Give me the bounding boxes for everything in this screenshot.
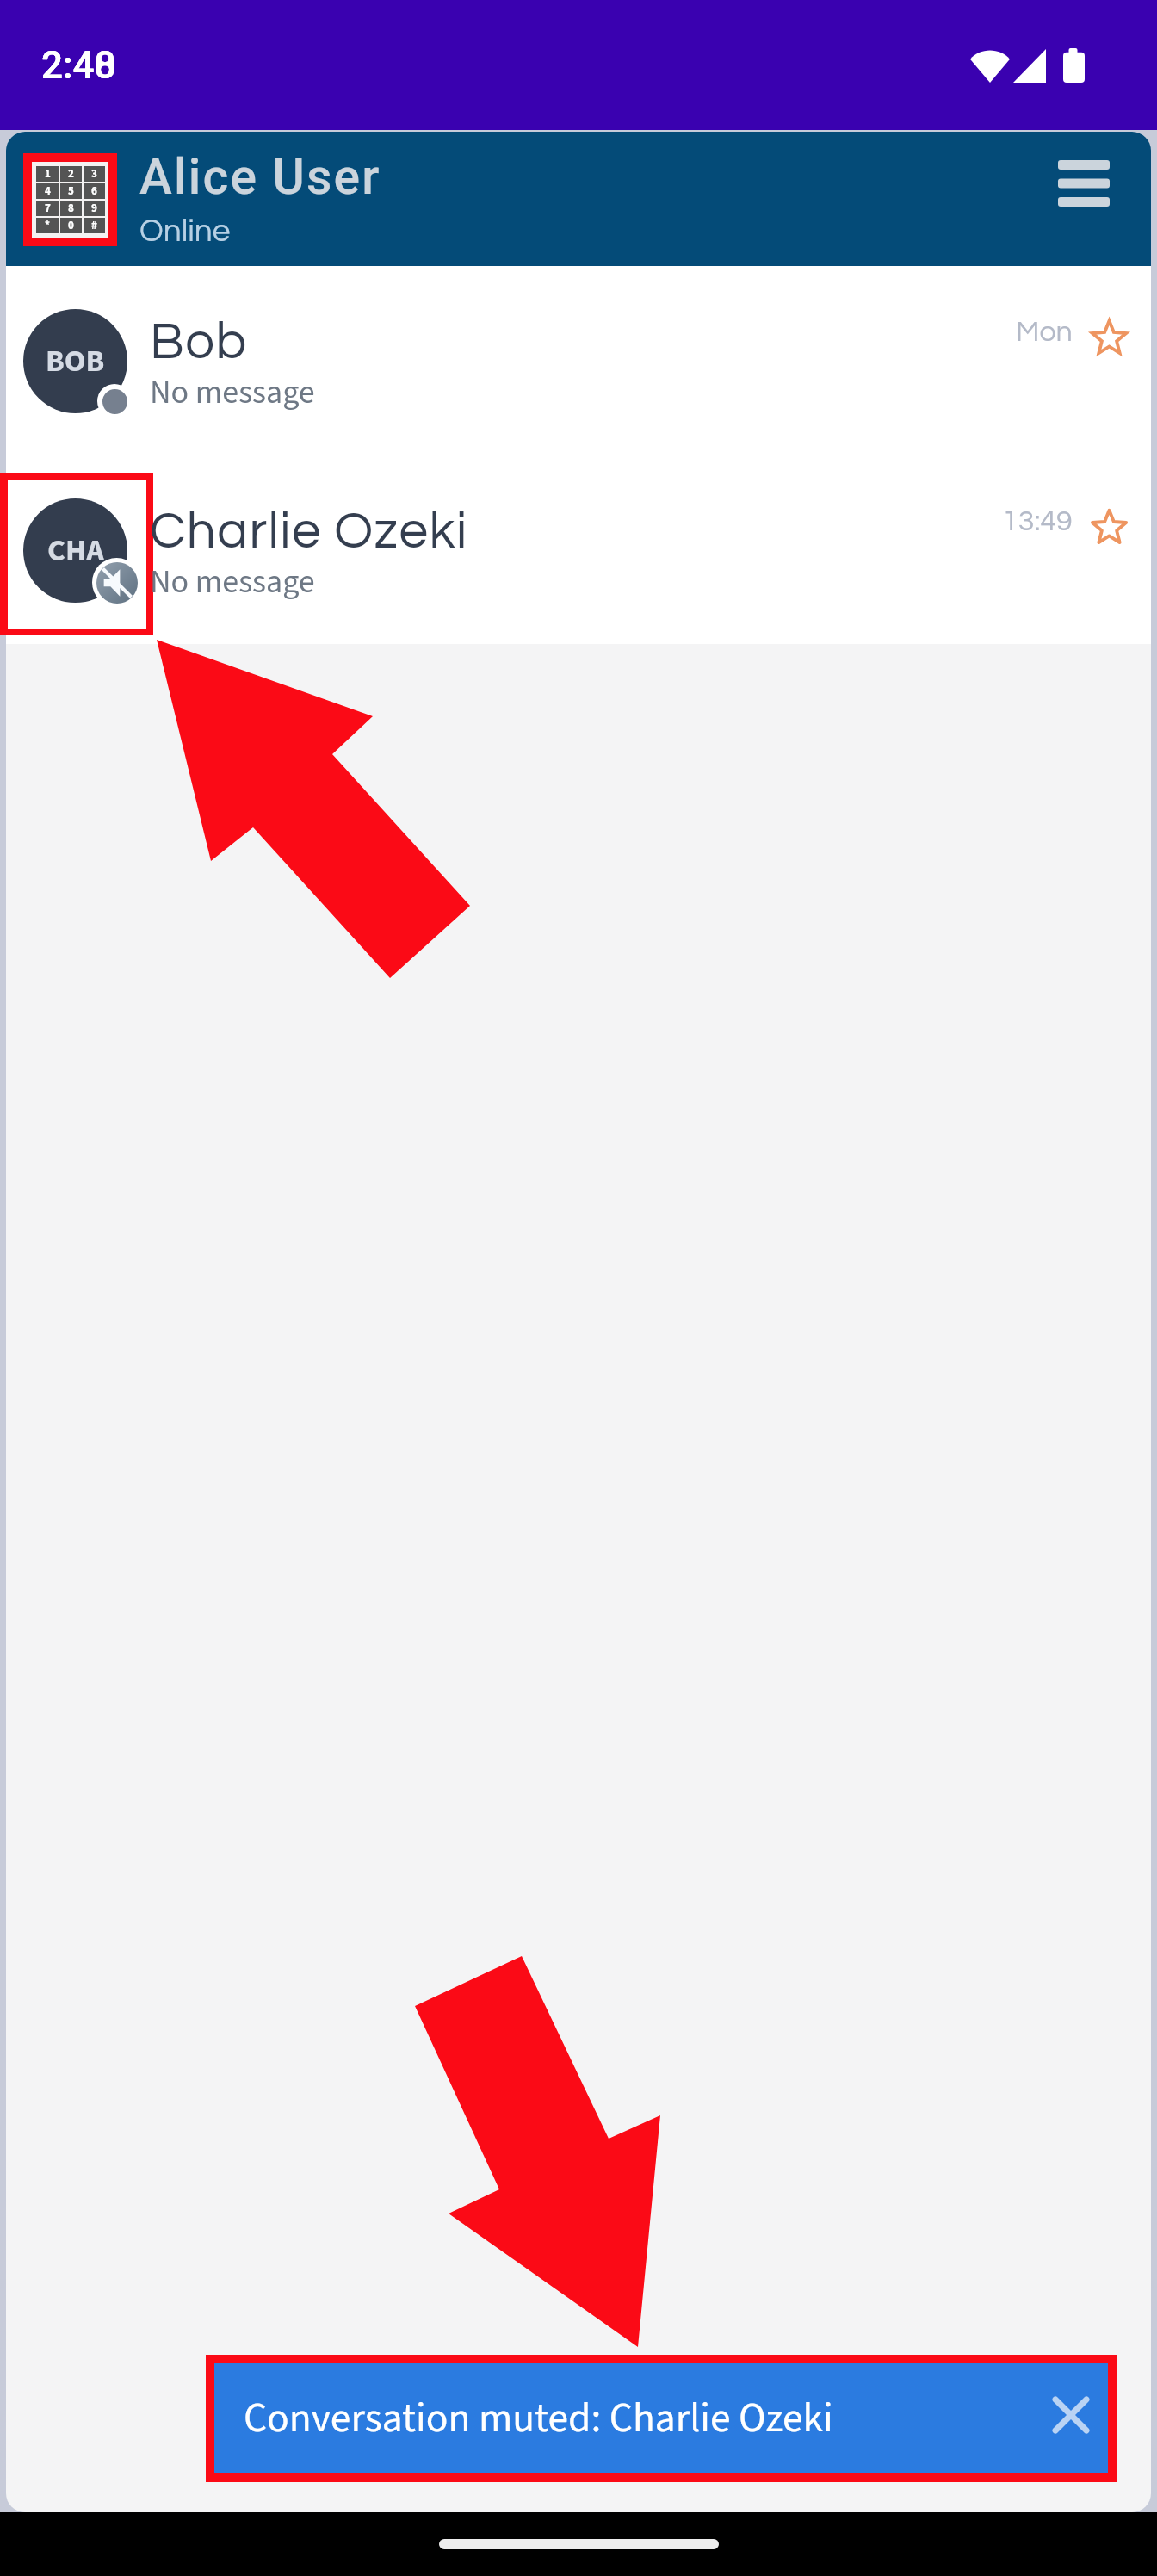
- staticText: 2:48: [41, 43, 116, 88]
- staticText: 8: [68, 201, 74, 216]
- button[interactable]: Favourite: [1081, 310, 1136, 365]
- staticText: 7: [45, 201, 51, 216]
- staticText: #: [91, 218, 97, 233]
- staticText: 3: [91, 166, 97, 182]
- staticText: 13:49: [1002, 506, 1073, 536]
- staticText: 5: [68, 183, 74, 199]
- staticText: 2:40: [41, 43, 116, 88]
- staticText: 2: [68, 166, 74, 182]
- staticText: 0: [68, 218, 74, 233]
- staticText: BOB: [46, 339, 105, 383]
- staticText: *: [45, 218, 50, 233]
- button[interactable]: Dismiss: [1038, 2386, 1104, 2451]
- staticText: CHA: [47, 529, 104, 573]
- button[interactable]: Dialpad: [23, 153, 117, 246]
- button[interactable]: Conversation muted: Charlie Ozeki: [214, 2363, 1108, 2473]
- button[interactable]: Menu: [1030, 133, 1137, 233]
- staticText: No message: [150, 559, 315, 605]
- button[interactable]: CHA: [6, 455, 1151, 644]
- staticText: Charlie Ozeki: [150, 505, 468, 559]
- staticText: 6: [91, 183, 97, 199]
- staticText: 1: [45, 166, 51, 182]
- button[interactable]: BOB: [6, 266, 1151, 455]
- staticText: Bob: [150, 316, 248, 369]
- staticText: Alice User: [139, 148, 381, 206]
- staticText: Mon: [1016, 317, 1073, 347]
- staticText: No message: [150, 369, 315, 416]
- staticText: Online: [139, 215, 231, 248]
- staticText: 4: [45, 183, 51, 199]
- staticText: Conversation muted: Charlie Ozeki: [244, 2389, 833, 2448]
- button[interactable]: Favourite: [1081, 499, 1136, 554]
- staticText: 9: [91, 201, 97, 216]
